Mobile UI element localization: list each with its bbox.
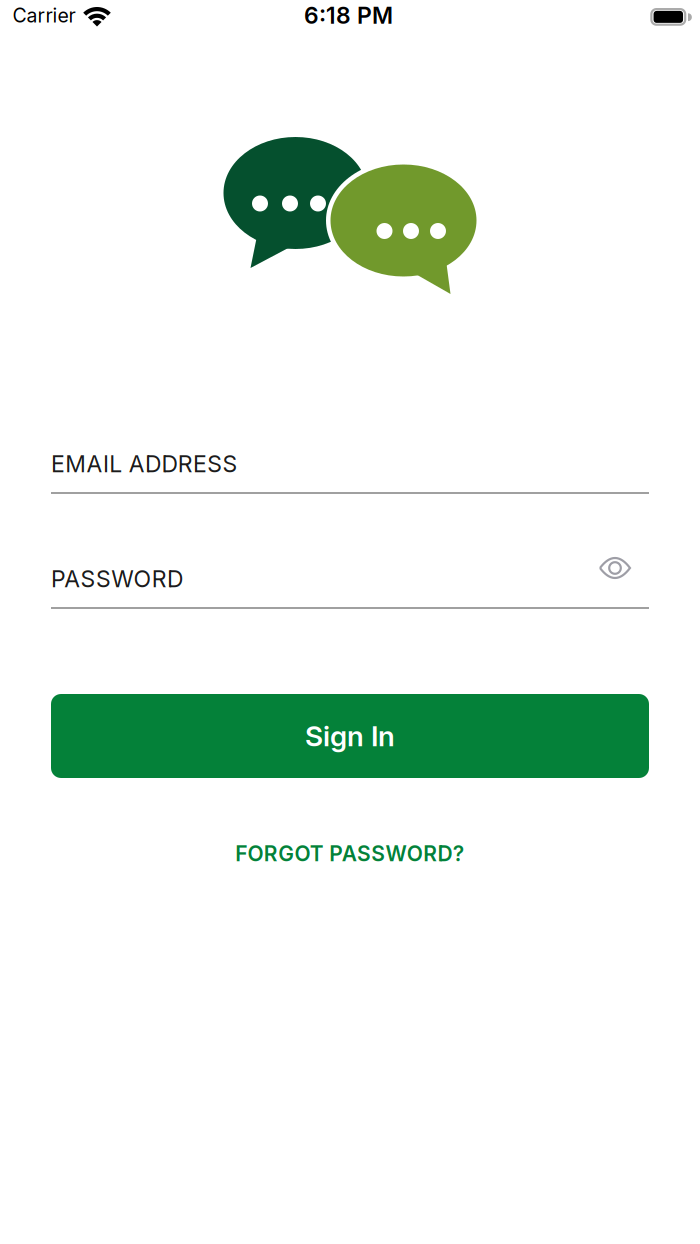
button[interactable]: Sign In: [51, 694, 649, 778]
staticText: EMAIL ADDRESS: [51, 450, 238, 478]
button[interactable]: PASSWORD: [51, 565, 649, 609]
staticText: 6:18 PM: [304, 2, 393, 29]
button[interactable]: EMAIL ADDRESS: [51, 450, 649, 494]
staticText: PASSWORD: [51, 565, 183, 593]
staticText: Carrier: [12, 4, 75, 27]
button[interactable]: FORGOT PASSWORD?: [235, 841, 464, 866]
staticText: Sign In: [305, 719, 395, 753]
staticText: FORGOT PASSWORD?: [235, 841, 464, 866]
button[interactable]: Show password: [595, 550, 635, 586]
